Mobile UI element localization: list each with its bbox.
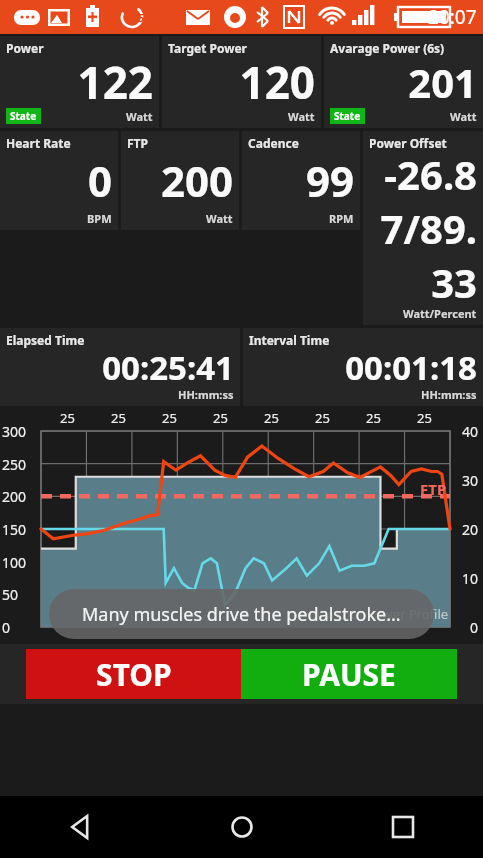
staticText: Watt (450, 109, 477, 124)
staticText: 250 (2, 455, 27, 474)
button[interactable]: STOP (26, 649, 241, 699)
staticText: 0 (6, 152, 112, 209)
staticText: PAUSE (302, 654, 396, 695)
button[interactable]: Power Offset (363, 131, 483, 325)
staticText: Target Power (168, 40, 247, 56)
staticText: 25 (264, 409, 279, 427)
button[interactable]: Heart Rate (0, 131, 118, 230)
button[interactable]: Home (161, 796, 322, 858)
staticText: 20 (462, 520, 479, 539)
button[interactable]: Recent apps (322, 796, 483, 858)
staticText: 25 (162, 409, 177, 427)
staticText: HH:mm:ss (178, 387, 234, 402)
button[interactable]: Avarage Power (6s) (324, 36, 483, 128)
staticText: 120 (168, 52, 315, 112)
button[interactable]: Power (0, 36, 159, 128)
staticText: Cadence (248, 135, 299, 151)
staticText: 25 (60, 409, 75, 427)
staticText: RPM (329, 211, 354, 226)
staticText: Workout Power Profile (311, 605, 449, 623)
staticText: 20:07 (428, 4, 477, 30)
staticText: 54% (138, 10, 161, 25)
button[interactable]: Elapsed Time (0, 328, 240, 406)
staticText: Watt (288, 109, 315, 124)
staticText: 25 (366, 409, 381, 427)
staticText: 300 (2, 422, 27, 441)
staticText: Watt (206, 211, 233, 226)
staticText: 0 (2, 618, 11, 637)
staticText: 99 (248, 152, 354, 209)
staticText: -26.87/89.33 (369, 147, 477, 309)
staticText: Interval Time (249, 332, 330, 348)
staticText: Watt (126, 109, 153, 124)
staticText: BPM (87, 211, 112, 226)
staticText: Elapsed Time (6, 332, 85, 348)
staticText: Heart Rate (6, 135, 71, 151)
button[interactable]: Interval Time (243, 328, 483, 406)
staticText: State (334, 109, 361, 123)
staticText: State (10, 109, 37, 123)
staticText: Power (6, 40, 44, 56)
staticText: 201 (330, 55, 477, 109)
staticText: 25 (111, 409, 126, 427)
staticText: Avarage Power (6s) (330, 40, 445, 56)
staticText: 100 (2, 553, 27, 572)
staticText: 50 (2, 585, 19, 604)
button[interactable]: PAUSE (241, 649, 457, 699)
button[interactable]: Target Power (162, 36, 321, 128)
staticText: 10 (462, 569, 479, 588)
staticText: 25 (213, 409, 228, 427)
staticText: Watt/Percent (403, 306, 477, 321)
button[interactable]: Cadence (242, 131, 360, 230)
staticText: 150 (2, 520, 27, 539)
staticText: 30 (462, 471, 479, 490)
staticText: 122 (6, 52, 153, 112)
staticText: 0 (470, 618, 479, 637)
staticText: 25 (315, 409, 330, 427)
staticText: FTP (127, 135, 148, 151)
staticText: 00:01:18 (249, 345, 477, 390)
button[interactable]: FTP (121, 131, 239, 230)
staticText: 200 (127, 152, 233, 209)
staticText: STOP (96, 654, 172, 695)
staticText: FTP (420, 479, 447, 499)
staticText: Power Offset (369, 135, 447, 151)
staticText: Many muscles drive the pedalstroke... (82, 602, 401, 627)
staticText: 25 (417, 409, 432, 427)
button[interactable]: Back (0, 796, 161, 858)
staticText: 200 (2, 487, 27, 506)
staticText: 00:25:41 (6, 345, 234, 390)
staticText: HH:mm:ss (421, 387, 477, 402)
staticText: 40 (462, 422, 479, 441)
